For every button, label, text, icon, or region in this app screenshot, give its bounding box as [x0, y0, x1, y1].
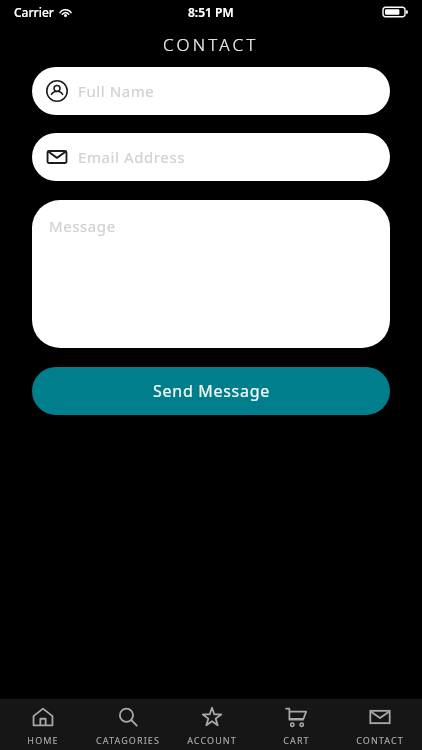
staticText: CATAGORIES — [96, 734, 160, 746]
staticText: Send Message — [153, 380, 270, 402]
staticText: CONTACT — [356, 734, 404, 746]
staticText: Carrier — [14, 4, 54, 20]
staticText: HOME — [27, 734, 59, 746]
staticText: Full Name — [78, 81, 155, 101]
staticText: Message — [49, 216, 116, 236]
staticText: 8:51 PM — [188, 4, 234, 20]
button[interactable]: CART — [254, 699, 338, 750]
button[interactable]: HOME — [0, 699, 85, 750]
button[interactable]: ACCOUNT — [170, 699, 254, 750]
button[interactable]: CONTACT — [338, 699, 422, 750]
staticText: CONTACT — [163, 33, 259, 56]
button[interactable]: CATAGORIES — [85, 699, 170, 750]
button[interactable]: Email Address — [32, 133, 390, 181]
button[interactable]: Send Message — [32, 367, 390, 415]
button[interactable]: Message — [32, 200, 390, 348]
staticText: ACCOUNT — [187, 734, 237, 746]
staticText: CART — [283, 734, 310, 746]
staticText: Email Address — [78, 147, 185, 167]
button[interactable]: Full Name — [32, 67, 390, 115]
